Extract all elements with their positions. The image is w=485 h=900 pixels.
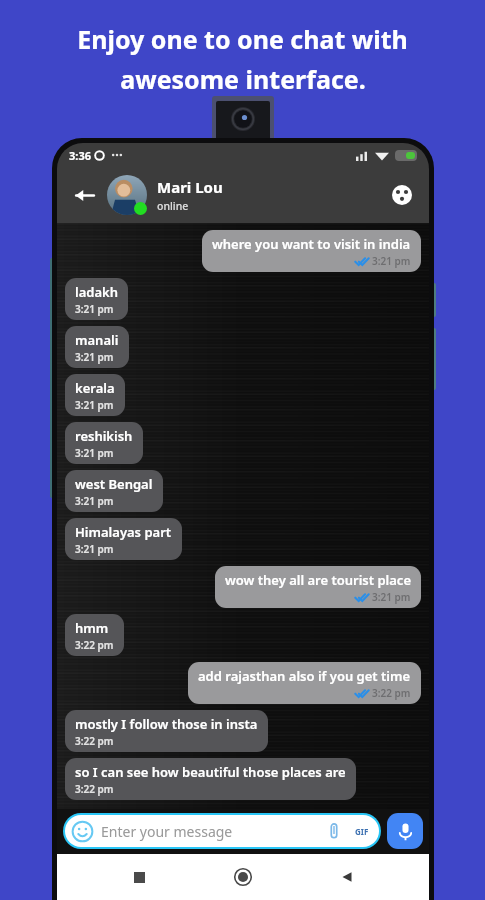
button[interactable]: Home xyxy=(228,862,258,892)
staticText: 3:21 pm xyxy=(75,398,114,412)
staticText: so I can see how beautiful those places … xyxy=(75,763,346,781)
button[interactable]: wow they all are tourist place xyxy=(215,566,421,608)
button[interactable]: Attach file xyxy=(324,821,344,841)
staticText: add rajasthan also if you get time xyxy=(198,667,411,685)
staticText: 3:21 pm xyxy=(75,350,114,364)
button[interactable]: reshikish xyxy=(65,422,143,464)
staticText: 3:36 xyxy=(69,148,91,163)
button[interactable] xyxy=(107,175,147,215)
staticText: reshikish xyxy=(75,427,133,445)
staticText: 3:22 pm xyxy=(75,734,114,748)
button[interactable]: Himalayas part xyxy=(65,518,182,560)
button[interactable]: kerala xyxy=(65,374,125,416)
staticText: Mari Lou xyxy=(157,177,223,197)
staticText: 3:21 pm xyxy=(75,494,114,508)
button[interactable]: west Bengal xyxy=(65,470,163,512)
button[interactable]: Record voice message xyxy=(387,813,423,849)
button[interactable]: Recent apps xyxy=(124,862,154,892)
staticText: 3:21 pm xyxy=(75,446,114,460)
staticText: 3:22 pm xyxy=(372,686,411,700)
button[interactable]: Enter your message xyxy=(65,815,379,847)
staticText: wow they all are tourist place xyxy=(225,571,411,589)
staticText: Enjoy one to one chat with xyxy=(77,22,408,56)
button[interactable]: Send GIF xyxy=(354,825,370,838)
button[interactable]: mostly I follow those in insta xyxy=(65,710,268,752)
staticText: kerala xyxy=(75,379,115,397)
staticText: 3:21 pm xyxy=(372,254,411,268)
staticText: 3:21 pm xyxy=(75,542,114,556)
button[interactable]: ladakh xyxy=(65,278,128,320)
staticText: 3:22 pm xyxy=(75,782,114,796)
button[interactable]: Group options xyxy=(385,178,419,212)
staticText: ladakh xyxy=(75,283,118,301)
button[interactable]: manali xyxy=(65,326,129,368)
staticText: Enter your message xyxy=(101,822,233,841)
staticText: mostly I follow those in insta xyxy=(75,715,258,733)
button[interactable]: where you want to visit in india xyxy=(202,230,421,272)
staticText: manali xyxy=(75,331,119,349)
staticText: online xyxy=(157,199,189,213)
staticText: GIF xyxy=(355,826,369,837)
button[interactable]: add rajasthan also if you get time xyxy=(188,662,421,704)
staticText: 3:22 pm xyxy=(75,638,114,652)
staticText: where you want to visit in india xyxy=(212,235,411,253)
staticText: Himalayas part xyxy=(75,523,172,541)
button[interactable]: Back xyxy=(67,178,101,212)
button[interactable]: hmm xyxy=(65,614,124,656)
staticText: hmm xyxy=(75,619,109,637)
staticText: awesome interface. xyxy=(120,62,366,96)
staticText: west Bengal xyxy=(75,475,153,493)
button[interactable]: Back xyxy=(332,862,362,892)
staticText: 3:21 pm xyxy=(75,302,114,316)
staticText: 3:21 pm xyxy=(372,590,411,604)
button[interactable]: so I can see how beautiful those places … xyxy=(65,758,356,800)
